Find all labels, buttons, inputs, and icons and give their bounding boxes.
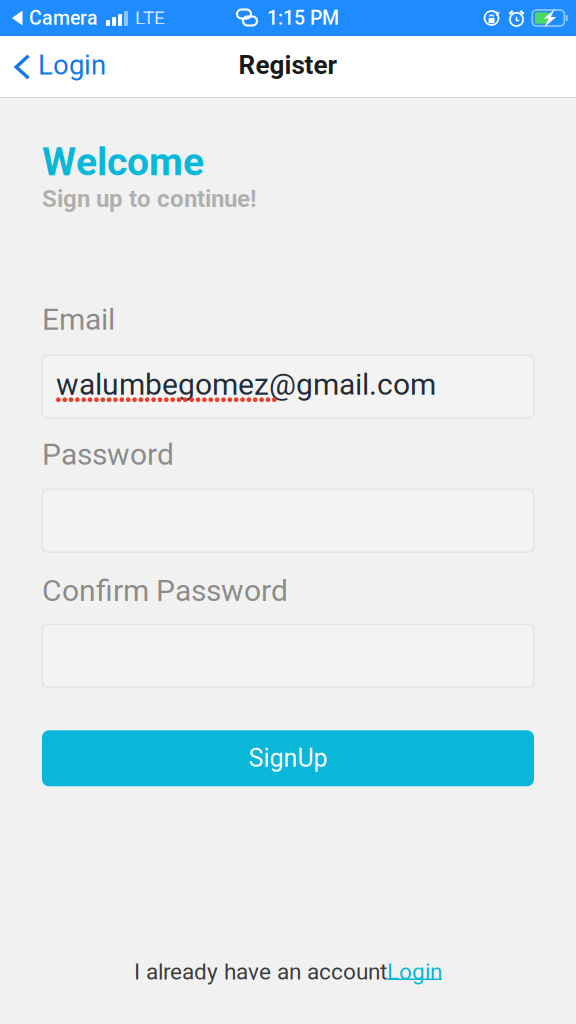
staticText: LTE	[135, 7, 165, 29]
staticText: Email	[42, 302, 115, 337]
button[interactable]: Login	[387, 958, 442, 985]
staticText: 1:15 PM	[267, 7, 339, 29]
staticText: Confirm Password	[42, 573, 288, 608]
staticText: Login	[387, 958, 442, 985]
staticText: walumbegomez@gmail.com	[56, 367, 436, 402]
staticText: Register	[238, 50, 337, 80]
staticText: Camera	[29, 7, 98, 29]
staticText: SignUp	[248, 744, 327, 773]
staticText: I already have an account	[134, 958, 387, 985]
staticText: Login	[38, 49, 106, 81]
staticText: Sign up to continue!	[42, 185, 256, 213]
button[interactable]: SignUp	[42, 730, 534, 786]
button[interactable]: Login	[0, 36, 118, 98]
staticText: Welcome	[42, 139, 204, 185]
staticText: Password	[42, 437, 174, 472]
